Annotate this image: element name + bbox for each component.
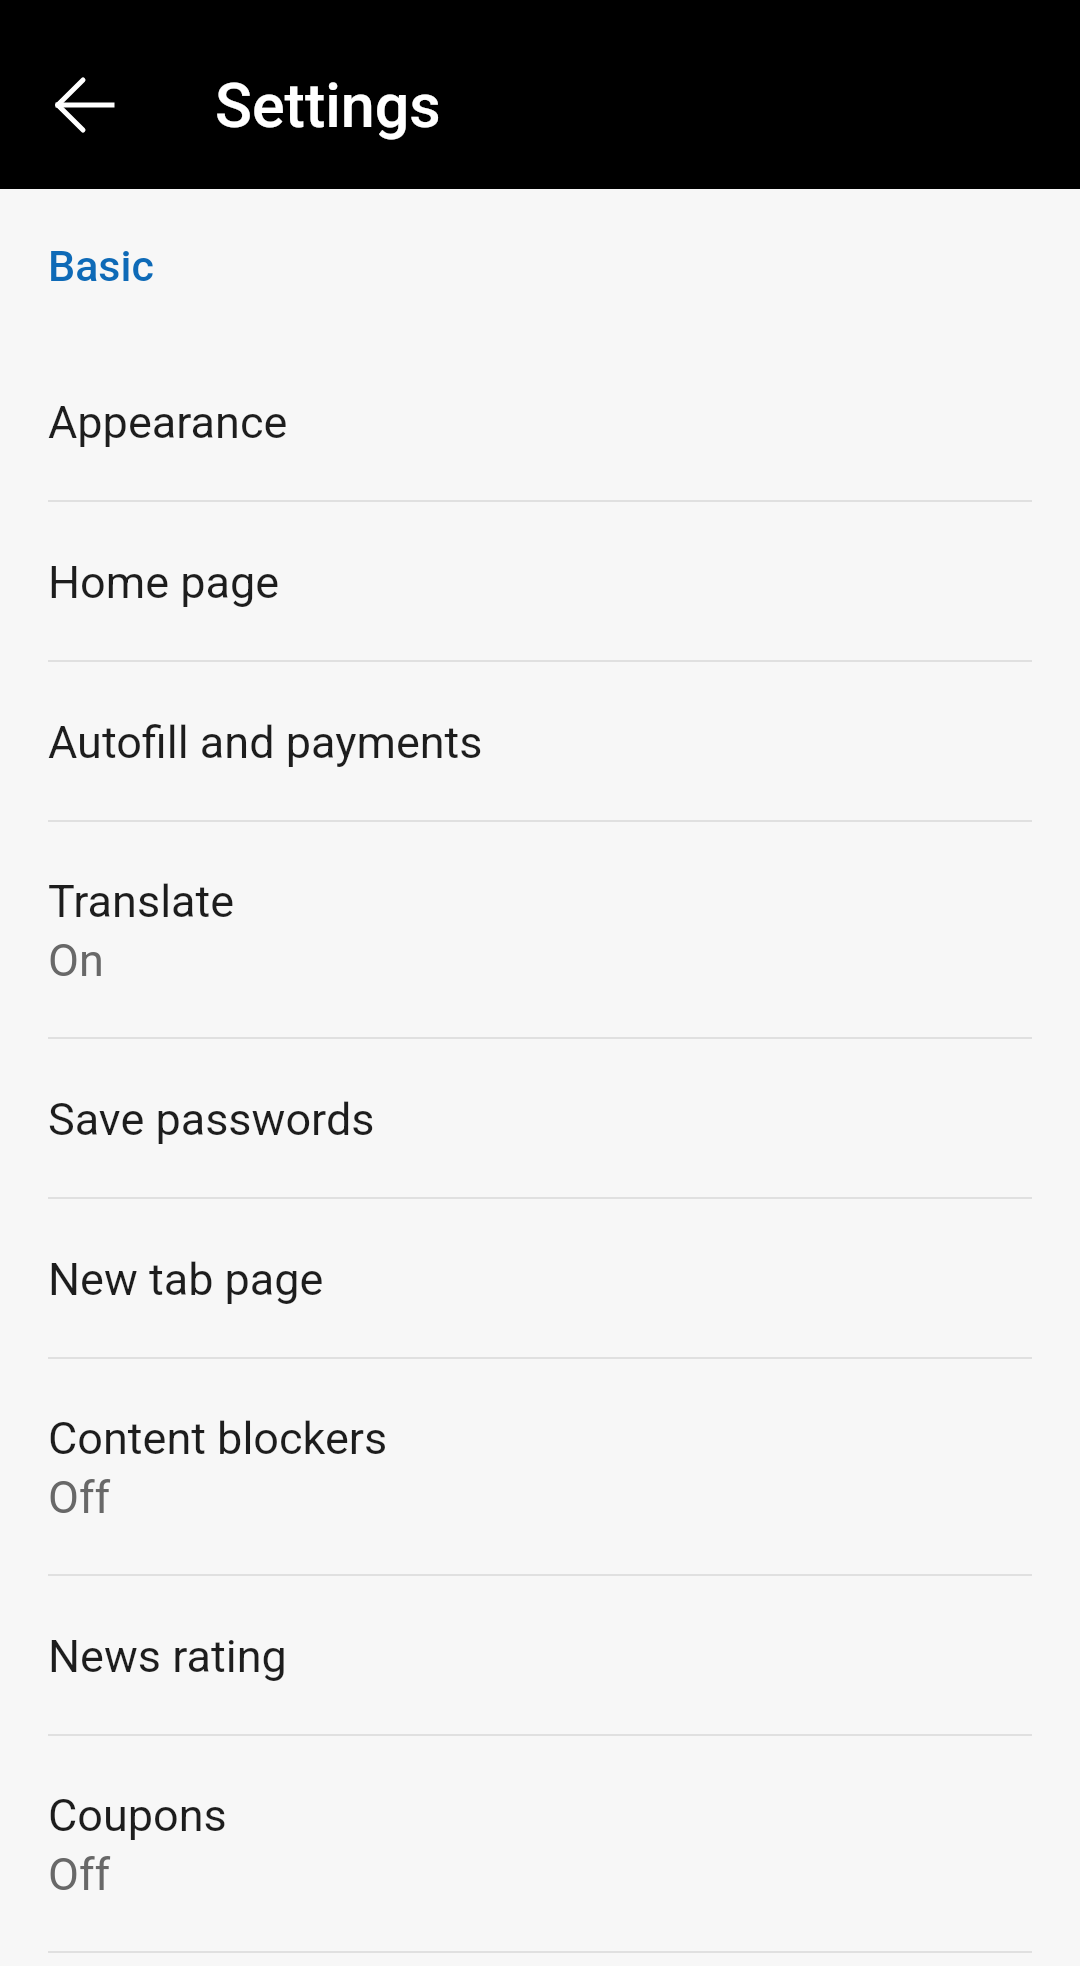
button[interactable]: News rating bbox=[0, 1576, 1080, 1736]
staticText: Autofill and payments bbox=[48, 716, 483, 769]
staticText: Content blockers bbox=[48, 1412, 388, 1465]
button[interactable]: Appearance bbox=[0, 342, 1080, 502]
staticText: Off bbox=[48, 1471, 111, 1524]
staticText: News rating bbox=[48, 1630, 287, 1683]
staticText: Home page bbox=[48, 556, 280, 609]
button[interactable]: Content blockers bbox=[0, 1359, 1080, 1576]
button[interactable]: Coupons bbox=[0, 1736, 1080, 1953]
button[interactable]: Translate bbox=[0, 822, 1080, 1039]
staticText: Off bbox=[48, 1848, 111, 1901]
button[interactable]: Navigate up bbox=[28, 48, 142, 162]
button[interactable]: Save passwords bbox=[0, 1039, 1080, 1199]
staticText: Appearance bbox=[48, 396, 288, 449]
staticText: Settings bbox=[215, 70, 441, 141]
button[interactable]: Autofill and payments bbox=[0, 662, 1080, 822]
button[interactable]: Home page bbox=[0, 502, 1080, 662]
button[interactable]: New tab page bbox=[0, 1199, 1080, 1359]
staticText: On bbox=[48, 934, 104, 987]
staticText: Translate bbox=[48, 875, 235, 928]
staticText: Coupons bbox=[48, 1789, 227, 1842]
staticText: Save passwords bbox=[48, 1093, 375, 1146]
staticText: Basic bbox=[48, 241, 154, 291]
staticText: New tab page bbox=[48, 1253, 324, 1306]
